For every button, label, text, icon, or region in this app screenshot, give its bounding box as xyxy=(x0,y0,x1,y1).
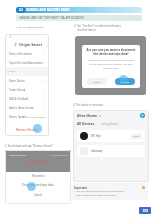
staticText: Remove Device xyxy=(28,160,48,164)
staticText: Cancel xyxy=(34,193,43,197)
staticText: P.12 xyxy=(143,209,148,213)
staticText: Share Device xyxy=(9,79,44,83)
staticText: All Devices xyxy=(77,122,95,126)
button[interactable]: Remove Device xyxy=(5,125,49,134)
staticText: FAQ & Feedback xyxy=(9,97,44,101)
staticText: Offline xyxy=(133,135,140,138)
staticText: 3. Tap "Confirm" to unbind and factory r… xyxy=(74,24,121,32)
button[interactable]: Device Update xyxy=(5,112,49,121)
staticText: Device Information xyxy=(9,52,44,56)
button[interactable]: Reconnect xyxy=(5,173,71,179)
staticText: Gateway xyxy=(91,149,103,153)
button[interactable]: Share Device xyxy=(5,76,49,85)
staticText: Create Group xyxy=(9,88,44,92)
button[interactable]: Device Information xyxy=(5,49,49,58)
staticText: IR1 Key xyxy=(91,134,101,138)
button[interactable]: P.12 xyxy=(139,207,151,214)
staticText: 4. The device is removed. xyxy=(73,103,104,107)
button[interactable]: Create Group xyxy=(5,85,49,94)
button[interactable]: Cancel xyxy=(5,192,71,198)
button[interactable]: Disconnect and wipe data xyxy=(5,182,71,188)
staticText: Disconnect and wipe data xyxy=(22,183,54,187)
button[interactable]: Living Room xyxy=(101,122,119,126)
button[interactable]: Offline xyxy=(131,134,142,139)
button[interactable]: Add device xyxy=(140,113,145,118)
staticText: UNBIND AND FACTORY RESET xyxy=(26,8,70,12)
staticText: The device will be removed from this hom… xyxy=(85,59,137,70)
staticText: 3.2 xyxy=(19,8,23,12)
button[interactable]: IR1 Key xyxy=(77,130,145,142)
staticText: No updates available xyxy=(50,154,68,156)
staticText: UNBIND AND FACTORY RESET VIA APPLICATION xyxy=(19,16,84,20)
button[interactable]: Cancel xyxy=(87,78,107,85)
button[interactable]: Back xyxy=(9,35,12,38)
staticText: 1. Go to "Device Details" xyxy=(16,25,45,28)
button[interactable]: Confirm xyxy=(115,78,135,85)
button[interactable]: Gateway xyxy=(77,145,145,157)
button[interactable]: All Devices xyxy=(77,122,95,126)
other: Edit name xyxy=(46,44,49,47)
staticText: Device Update xyxy=(9,115,27,119)
staticText: Tap-to-Run and Automation xyxy=(9,61,44,65)
staticText: 1. The WiFi name might need to be reconf… xyxy=(74,190,124,196)
staticText: Remove Device xyxy=(16,128,38,132)
button[interactable]: FAQ & Feedback xyxy=(5,94,49,103)
staticText: Origin Smart xyxy=(19,42,42,47)
staticText: Alice Home xyxy=(77,113,98,118)
button[interactable]: Tap-to-Run and Automation xyxy=(5,58,49,67)
staticText: Living Room xyxy=(101,122,119,126)
staticText: Others xyxy=(9,70,16,73)
staticText: No updates available xyxy=(27,116,46,119)
staticText: Cancel xyxy=(93,80,101,83)
staticText: Device Update xyxy=(9,153,26,156)
staticText: Reconnect xyxy=(32,174,45,178)
staticText: Confirm xyxy=(120,80,130,83)
staticText: Add to Home Screen xyxy=(9,106,44,110)
staticText: Are you sure you want to disconnect this… xyxy=(85,48,137,56)
staticText: Important xyxy=(74,186,87,189)
staticText: 2. Scroll down and tap "Remove Device" xyxy=(5,144,54,148)
button[interactable]: Add to Home Screen xyxy=(5,103,49,112)
